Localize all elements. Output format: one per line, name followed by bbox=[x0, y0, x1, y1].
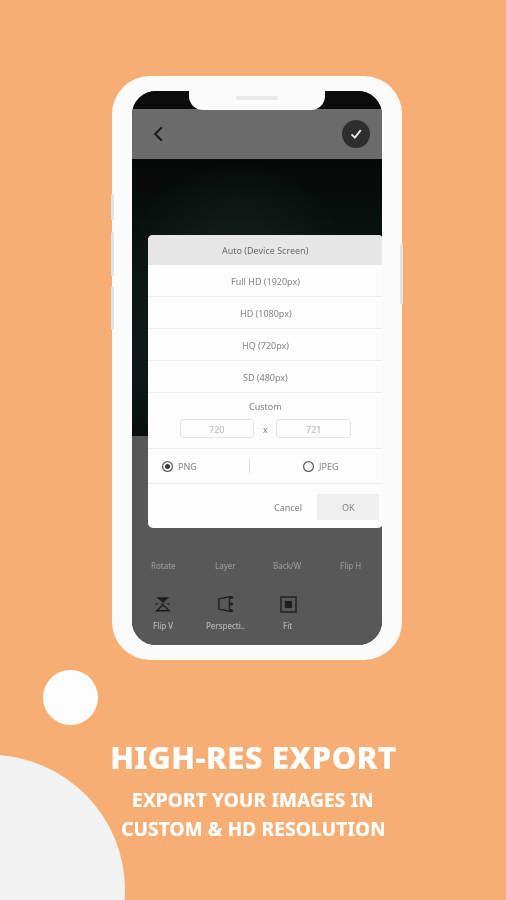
staticText: Rotate bbox=[151, 560, 176, 571]
staticText: Cancel bbox=[274, 501, 303, 513]
staticText: HIGH-RES EXPORT bbox=[110, 736, 397, 778]
staticText: Back/W bbox=[273, 560, 302, 571]
staticText: x bbox=[263, 423, 268, 435]
staticText: CUSTOM & HD RESOLUTION bbox=[121, 816, 386, 842]
button[interactable]: Layer bbox=[194, 554, 256, 576]
button[interactable]: Fit bbox=[256, 594, 319, 631]
button[interactable]: Auto (Device Screen) bbox=[148, 235, 382, 265]
staticText: SD (480px) bbox=[243, 371, 288, 383]
staticText: JPEG bbox=[319, 460, 339, 472]
button[interactable]: Rotate bbox=[132, 554, 194, 576]
staticText: Flip H bbox=[340, 560, 362, 571]
button[interactable]: SD (480px) bbox=[148, 361, 382, 392]
button[interactable]: HQ (720px) bbox=[148, 329, 382, 360]
button[interactable]: Flip H bbox=[319, 554, 382, 576]
staticText: EXPORT YOUR IMAGES IN bbox=[132, 787, 374, 813]
button[interactable]: PNG bbox=[162, 460, 197, 472]
staticText: Perspecti.. bbox=[206, 620, 245, 631]
staticText: HQ (720px) bbox=[242, 339, 289, 351]
staticText: Layer bbox=[215, 560, 236, 571]
staticText: Fit bbox=[283, 620, 293, 631]
button[interactable]: 721 bbox=[276, 419, 351, 438]
staticText: 720 bbox=[209, 423, 225, 435]
staticText: Full HD (1920px) bbox=[231, 275, 300, 287]
staticText: Flip V bbox=[153, 620, 174, 631]
staticText: Auto (Device Screen) bbox=[222, 244, 309, 256]
button[interactable]: Full HD (1920px) bbox=[148, 265, 382, 296]
button[interactable]: HD (1080px) bbox=[148, 297, 382, 328]
staticText: Custom bbox=[249, 400, 282, 412]
button[interactable]: Perspecti.. bbox=[194, 594, 256, 631]
staticText: OK bbox=[342, 501, 355, 513]
button[interactable]: Cancel bbox=[259, 494, 317, 520]
staticText: PNG bbox=[178, 460, 197, 472]
staticText: 721 bbox=[306, 423, 322, 435]
button[interactable]: Back/W bbox=[256, 554, 319, 576]
button[interactable]: JPEG bbox=[303, 460, 339, 472]
button[interactable]: 720 bbox=[180, 419, 254, 438]
staticText: HD (1080px) bbox=[240, 307, 292, 319]
button[interactable]: Done bbox=[342, 120, 370, 148]
button[interactable]: Back bbox=[144, 119, 174, 149]
button[interactable]: Flip V bbox=[132, 594, 194, 631]
button[interactable]: OK bbox=[317, 494, 379, 520]
